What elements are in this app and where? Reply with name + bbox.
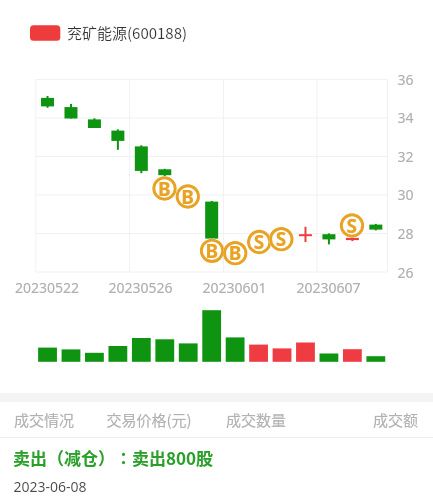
button[interactable] — [0, 402, 88, 437]
button[interactable] — [211, 402, 302, 437]
button[interactable] — [88, 402, 211, 437]
button[interactable] — [0, 440, 433, 500]
button[interactable] — [302, 402, 433, 437]
button[interactable] — [26, 20, 194, 46]
